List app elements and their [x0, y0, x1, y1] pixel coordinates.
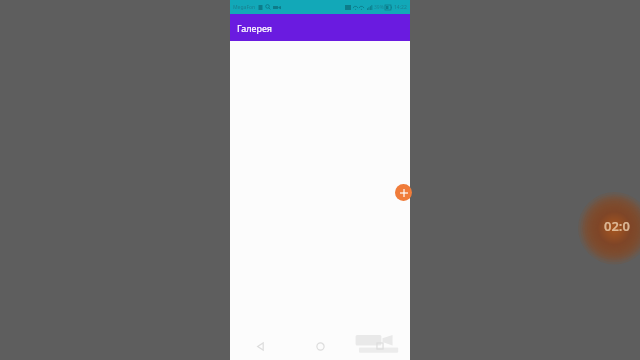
button[interactable]: Back	[230, 332, 290, 360]
button[interactable]: Home	[290, 332, 350, 360]
staticText: 14:22	[394, 4, 407, 11]
staticText: Галерея	[237, 22, 273, 34]
staticText: 02:0	[604, 217, 630, 235]
staticText: MegaFon	[233, 4, 256, 11]
button[interactable]: Recents	[350, 332, 410, 360]
button[interactable]: Add	[395, 184, 412, 201]
staticText: 39%	[374, 4, 384, 11]
